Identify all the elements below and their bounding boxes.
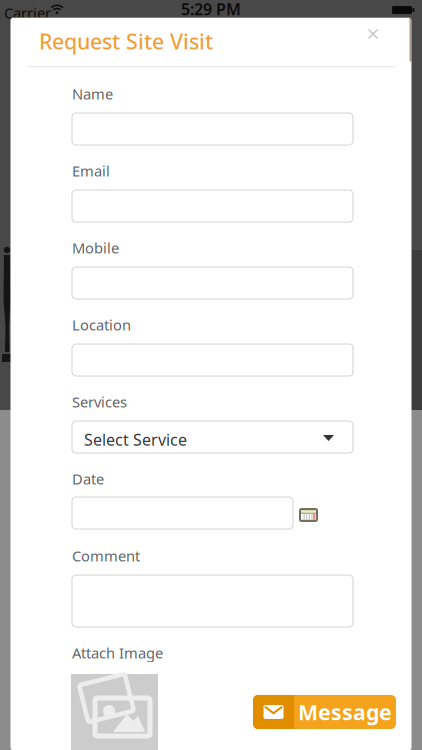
- button[interactable]: Message: [253, 695, 396, 729]
- staticText: Comment: [72, 546, 140, 565]
- staticText: Date: [72, 469, 104, 488]
- staticText: Location: [72, 315, 131, 334]
- staticText: Carrier: [4, 3, 51, 22]
- button[interactable]: Close: [363, 24, 383, 44]
- button[interactable]: Pick date: [299, 508, 318, 522]
- staticText: Request Site Visit: [39, 27, 213, 55]
- staticText: Email: [72, 161, 110, 180]
- staticText: Message: [298, 698, 392, 726]
- staticText: Name: [72, 84, 113, 103]
- staticText: Attach Image: [72, 643, 163, 662]
- staticText: Mobile: [72, 238, 119, 257]
- staticText: Services: [72, 392, 127, 411]
- staticText: Select Service: [84, 429, 187, 450]
- button[interactable]: Select Service: [72, 421, 353, 453]
- staticText: 5:29 PM: [181, 0, 241, 20]
- button[interactable]: Attach image: [71, 674, 158, 750]
